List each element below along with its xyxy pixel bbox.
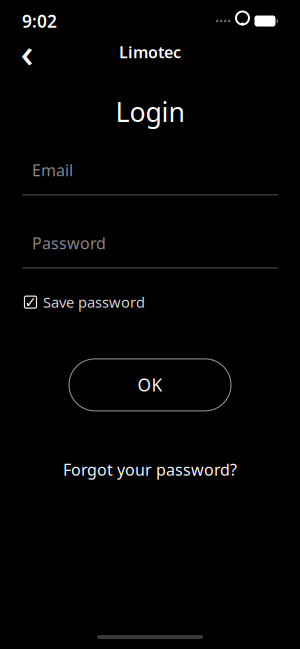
staticText: 9:02 [22, 9, 57, 32]
staticText: Forgot your password? [63, 459, 237, 480]
staticText: ‹ [20, 25, 33, 78]
staticText: Login [115, 94, 184, 129]
button[interactable]: Forgot your password? [53, 453, 247, 486]
staticText: OK [137, 373, 162, 396]
button[interactable]: OK [69, 359, 231, 411]
staticText: Password [32, 232, 106, 254]
button[interactable]: Back [10, 35, 44, 69]
button[interactable]: ✓ [24, 288, 145, 316]
staticText: ✓ [24, 294, 36, 310]
staticText: Email [32, 159, 73, 181]
staticText: Limotec [119, 41, 181, 63]
staticText: Save password [43, 292, 145, 312]
